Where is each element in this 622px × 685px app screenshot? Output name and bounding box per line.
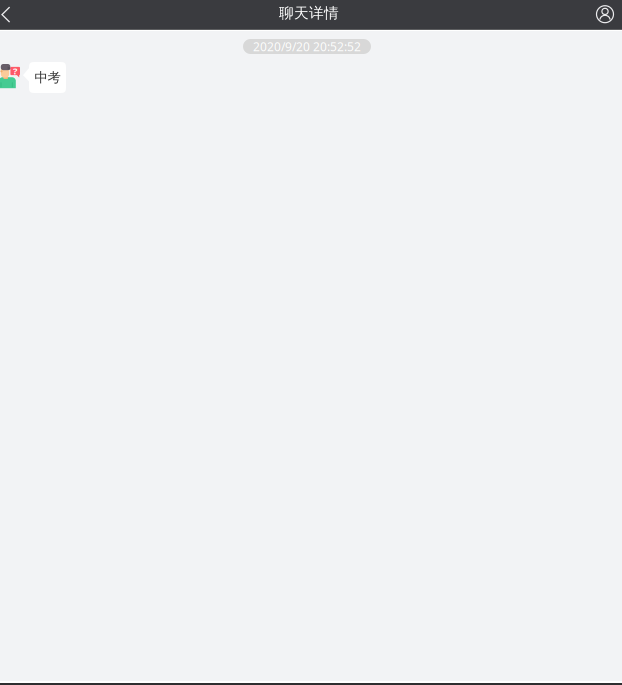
staticText: 聊天详情 — [279, 4, 339, 22]
staticText: 中考 — [34, 69, 60, 86]
button[interactable]: ? — [0, 54, 622, 93]
button[interactable]: Back — [0, 0, 22, 30]
button[interactable]: Profile — [592, 0, 622, 30]
staticText: 2020/9/20 20:52:52 — [253, 38, 361, 54]
staticText: ? — [13, 65, 17, 77]
